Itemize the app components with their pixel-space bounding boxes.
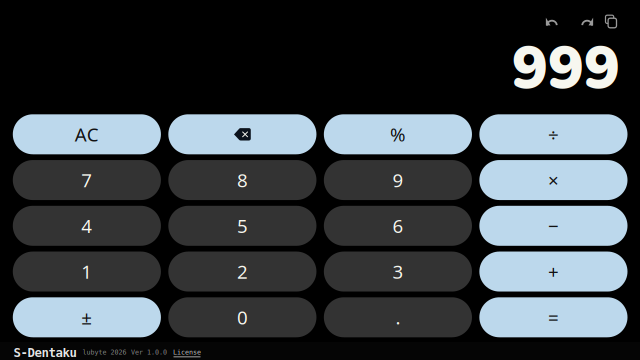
staticText: + (548, 259, 559, 284)
button[interactable]: 3 (324, 252, 472, 292)
staticText: = (548, 305, 559, 330)
staticText: 8 (237, 168, 248, 192)
button[interactable]: ± (13, 297, 161, 337)
button[interactable]: 8 (168, 160, 316, 200)
staticText: . (395, 305, 400, 330)
button[interactable]: 6 (324, 206, 472, 246)
staticText: AC (75, 122, 99, 147)
staticText: 9 (392, 168, 403, 192)
button[interactable]: AC (13, 114, 161, 154)
button[interactable] (168, 114, 316, 154)
staticText: % (390, 122, 406, 147)
button[interactable]: ÷ (479, 114, 627, 154)
button[interactable]: − (479, 206, 627, 246)
button[interactable]: 7 (13, 160, 161, 200)
button[interactable]: + (479, 252, 627, 292)
button[interactable]: Undo (538, 9, 566, 33)
button[interactable]: License (173, 348, 201, 357)
button[interactable]: % (324, 114, 472, 154)
button[interactable]: 0 (168, 297, 316, 337)
staticText: 0 (237, 305, 248, 330)
staticText: ± (81, 305, 92, 330)
staticText: 2 (237, 259, 248, 284)
button[interactable]: Redo (573, 9, 601, 33)
staticText: 6 (392, 213, 403, 238)
button[interactable]: × (479, 160, 627, 200)
staticText: 999 (512, 28, 620, 109)
button[interactable]: 5 (168, 206, 316, 246)
button[interactable]: . (324, 297, 472, 337)
staticText: 4 (81, 213, 92, 238)
button[interactable]: 2 (168, 252, 316, 292)
button[interactable]: 1 (13, 252, 161, 292)
button[interactable]: 9 (324, 160, 472, 200)
button[interactable]: 4 (13, 206, 161, 246)
staticText: 7 (81, 168, 92, 192)
staticText: × (548, 168, 559, 192)
button[interactable]: = (479, 297, 627, 337)
staticText: License (173, 348, 201, 356)
staticText: S-Dentaku (13, 345, 76, 360)
staticText: Ver 1.0.0 (131, 348, 167, 356)
staticText: 3 (392, 259, 403, 284)
staticText: 5 (237, 213, 248, 238)
button[interactable]: Copy (599, 9, 623, 33)
staticText: ÷ (548, 122, 559, 147)
staticText: − (548, 213, 559, 238)
staticText: lubyte 2026 (82, 348, 126, 356)
staticText: 1 (81, 259, 92, 284)
